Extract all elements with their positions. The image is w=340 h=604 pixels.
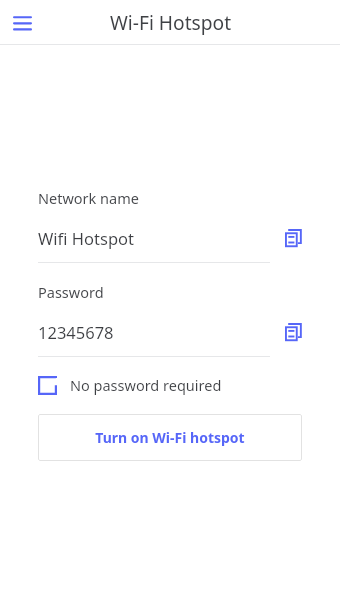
staticText: Network name — [38, 188, 139, 208]
button[interactable]: Copy — [275, 314, 311, 350]
button[interactable]: 12345678 — [38, 321, 270, 356]
button[interactable]: Copy — [275, 220, 311, 256]
staticText: Password — [38, 282, 104, 302]
staticText: 12345678 — [38, 321, 114, 343]
staticText: No password required — [70, 375, 222, 395]
staticText: Wifi Hotspot — [38, 227, 134, 249]
button[interactable]: Menu — [0, 1, 44, 45]
button[interactable]: Wifi Hotspot — [38, 227, 270, 262]
staticText: Wi-Fi Hotspot — [110, 9, 232, 35]
button[interactable]: Turn on Wi-Fi hotspot — [38, 414, 302, 461]
staticText: Turn on Wi-Fi hotspot — [95, 428, 245, 447]
button[interactable]: No password required — [38, 375, 222, 395]
